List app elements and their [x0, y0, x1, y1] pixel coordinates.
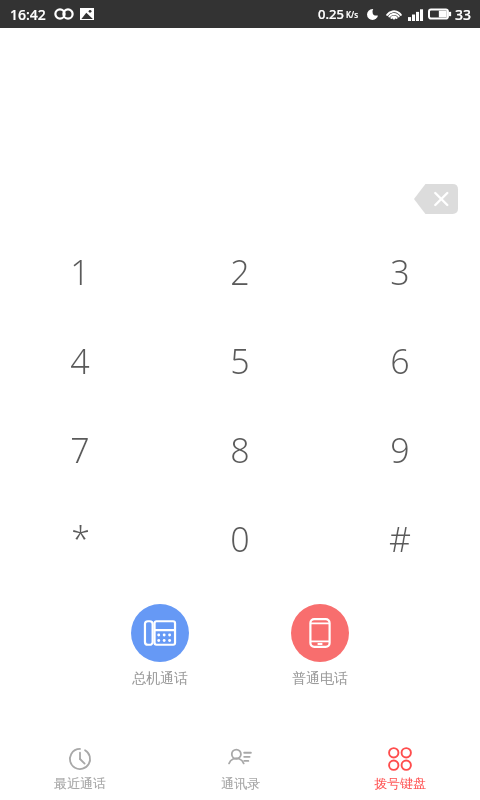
button[interactable]: 0: [160, 494, 320, 583]
staticText: 8: [230, 427, 250, 473]
button[interactable]: 7: [0, 405, 160, 494]
button[interactable]: 拨号键盘: [320, 738, 480, 800]
button[interactable]: 6: [320, 316, 480, 405]
button[interactable]: 5: [160, 316, 320, 405]
button[interactable]: 最近通话: [0, 738, 160, 800]
button[interactable]: 3: [320, 228, 480, 316]
staticText: 3: [390, 249, 410, 295]
button[interactable]: Delete: [414, 184, 458, 214]
button[interactable]: #: [320, 494, 480, 583]
staticText: 普通电话: [292, 670, 348, 688]
staticText: 33: [455, 5, 472, 24]
staticText: 0: [230, 516, 250, 562]
button[interactable]: 2: [160, 228, 320, 316]
staticText: 总机通话: [132, 670, 188, 688]
button[interactable]: 通讯录: [160, 738, 320, 800]
button[interactable]: 总机通话: [123, 604, 197, 688]
staticText: 0.25: [318, 5, 344, 23]
button[interactable]: 8: [160, 405, 320, 494]
staticText: 16:42: [10, 5, 46, 24]
staticText: 通讯录: [221, 775, 260, 791]
staticText: 1: [70, 249, 90, 295]
button[interactable]: *: [0, 494, 160, 583]
staticText: 拨号键盘: [374, 775, 426, 791]
staticText: *: [71, 516, 90, 562]
staticText: #: [389, 516, 411, 562]
button[interactable]: 1: [0, 228, 160, 316]
staticText: 2: [230, 249, 250, 295]
button[interactable]: 普通电话: [283, 604, 357, 688]
button[interactable]: 9: [320, 405, 480, 494]
staticText: 最近通话: [54, 775, 106, 791]
button[interactable]: 4: [0, 316, 160, 405]
staticText: 6: [390, 338, 410, 384]
staticText: K/s: [346, 9, 359, 20]
staticText: 7: [70, 427, 90, 473]
staticText: 5: [230, 338, 250, 384]
staticText: 4: [70, 338, 90, 384]
staticText: 9: [390, 427, 410, 473]
